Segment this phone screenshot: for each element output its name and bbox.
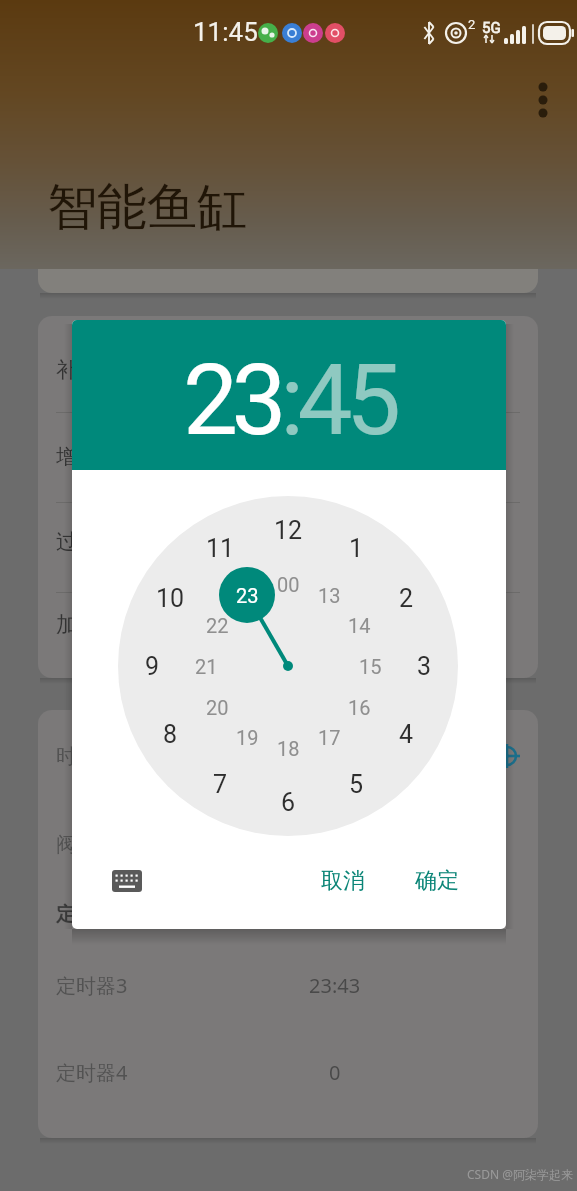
staticText: 定时器1 bbox=[56, 900, 128, 927]
staticText: 智能鱼缸 bbox=[47, 176, 247, 239]
staticText: 17 bbox=[318, 726, 341, 749]
staticText: 0 bbox=[329, 1059, 341, 1086]
staticText: 11 bbox=[206, 534, 235, 563]
staticText: 时间设定 bbox=[56, 744, 136, 769]
staticText: 阀门控制 bbox=[56, 832, 136, 857]
staticText: 5G bbox=[482, 19, 501, 37]
staticText: 增氧 bbox=[56, 443, 99, 470]
staticText: 22 bbox=[206, 614, 229, 637]
staticText: 18 bbox=[277, 737, 300, 760]
staticText: 21 bbox=[195, 655, 218, 678]
staticText: 4 bbox=[399, 720, 414, 749]
staticText: 确定 bbox=[415, 867, 459, 895]
button[interactable] bbox=[112, 866, 142, 896]
button[interactable] bbox=[530, 80, 556, 124]
button[interactable] bbox=[38, 1030, 538, 1114]
staticText: 1 bbox=[349, 534, 364, 563]
staticText: 加热 bbox=[56, 611, 99, 638]
staticText: 3 bbox=[417, 652, 432, 681]
staticText: 7 bbox=[213, 770, 228, 799]
staticText: 2 bbox=[468, 17, 476, 32]
button[interactable] bbox=[38, 581, 538, 669]
button[interactable] bbox=[38, 803, 538, 887]
button[interactable]: 取消 bbox=[298, 856, 388, 906]
staticText: 19 bbox=[236, 726, 259, 749]
button[interactable] bbox=[38, 413, 538, 501]
button[interactable] bbox=[38, 326, 538, 414]
staticText: 补光 bbox=[56, 356, 99, 383]
staticText: 9 bbox=[145, 652, 160, 681]
staticText: 定时器3 bbox=[56, 972, 128, 999]
button[interactable] bbox=[38, 498, 538, 586]
staticText: CSDN @阿柒学起来 bbox=[467, 1166, 573, 1182]
staticText: 8 bbox=[163, 720, 178, 749]
staticText: 20 bbox=[206, 696, 229, 719]
staticText: 13 bbox=[318, 584, 341, 607]
button[interactable] bbox=[38, 871, 538, 955]
staticText: 23 bbox=[236, 584, 259, 607]
staticText: 10 bbox=[156, 584, 185, 613]
staticText: 00 bbox=[277, 573, 300, 596]
staticText: 14 bbox=[348, 614, 371, 637]
staticText: 23:43 bbox=[309, 972, 361, 999]
staticText: 12 bbox=[274, 516, 303, 545]
staticText: 15 bbox=[359, 655, 382, 678]
button[interactable] bbox=[38, 943, 538, 1027]
staticText: 11:45 bbox=[193, 17, 258, 47]
button[interactable]: 确定 bbox=[392, 856, 482, 906]
staticText: 16 bbox=[348, 696, 371, 719]
staticText: 定时器4 bbox=[56, 1059, 128, 1086]
staticText: 取消 bbox=[321, 867, 365, 895]
staticText: 过滤 bbox=[56, 528, 99, 555]
button[interactable] bbox=[38, 715, 538, 799]
staticText: 23:45 bbox=[183, 343, 395, 458]
staticText: 6 bbox=[281, 788, 296, 817]
staticText: 2 bbox=[399, 584, 414, 613]
staticText: 5 bbox=[349, 770, 364, 799]
